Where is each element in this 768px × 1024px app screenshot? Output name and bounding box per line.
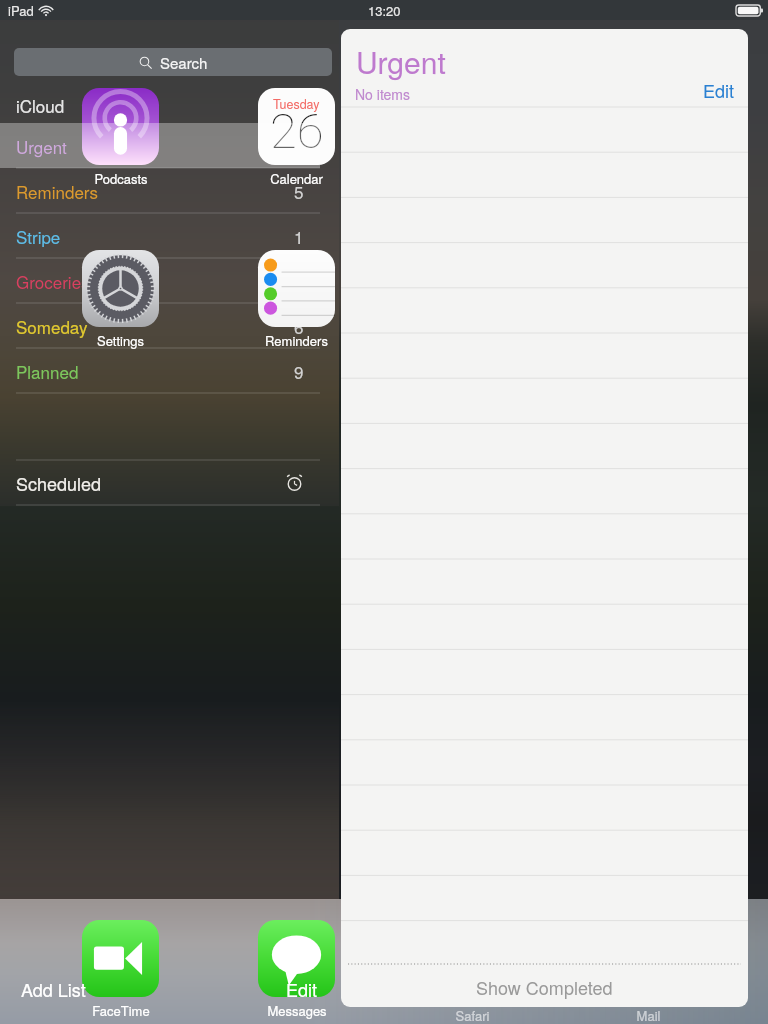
staticText: Tuesday — [273, 95, 320, 113]
staticText: Scheduled — [16, 470, 102, 496]
button[interactable]: Planned — [0, 348, 320, 393]
button[interactable]: Edit — [695, 72, 743, 108]
button[interactable]: Podcasts — [62, 88, 179, 188]
button[interactable]: Tuesday — [238, 88, 355, 188]
staticText: Calendar — [270, 169, 323, 188]
staticText: 13:20 — [368, 1, 401, 20]
staticText: Someday — [16, 314, 88, 338]
staticText: Add List — [21, 976, 86, 1000]
staticText: Edit — [703, 77, 735, 103]
button[interactable]: Show Completed — [341, 966, 748, 1007]
staticText: Stripe — [16, 224, 61, 248]
staticText: 1 — [294, 224, 304, 248]
staticText: Safari — [434, 1006, 511, 1024]
button[interactable]: Someday — [0, 303, 320, 348]
button[interactable]: Groceries — [0, 258, 320, 303]
staticText: Groceries — [16, 269, 90, 293]
button[interactable]: Add List — [10, 964, 97, 1012]
staticText: Urgent — [16, 134, 67, 158]
staticText: 5 — [294, 179, 304, 203]
staticText: Settings — [97, 331, 144, 350]
staticText: Show Completed — [476, 974, 613, 1000]
staticText: Search — [160, 52, 208, 73]
button[interactable]: iCloud — [0, 86, 320, 123]
staticText: Planned — [16, 359, 79, 383]
button[interactable]: Scheduled — [0, 460, 320, 505]
staticText: Reminders — [265, 331, 328, 350]
staticText: Messages — [267, 1001, 327, 1020]
button[interactable]: Search — [14, 48, 332, 76]
staticText: iCloud — [16, 93, 65, 117]
staticText: No items — [355, 84, 411, 104]
staticText: 6 — [294, 314, 304, 338]
staticText: Urgent — [356, 40, 446, 83]
button[interactable]: Reminders — [238, 250, 355, 350]
button[interactable]: FaceTime — [62, 920, 179, 1020]
staticText: Podcasts — [94, 169, 148, 188]
staticText: FaceTime — [92, 1001, 150, 1020]
button[interactable]: Edit — [275, 964, 329, 1012]
button[interactable]: Reminders — [0, 168, 320, 213]
staticText: Mail — [610, 1006, 687, 1024]
button[interactable]: Urgent — [0, 123, 320, 168]
staticText: Edit — [286, 976, 318, 1000]
staticText: Reminders — [16, 179, 99, 203]
button[interactable]: Settings — [62, 250, 179, 350]
button[interactable]: Stripe — [0, 213, 320, 258]
staticText: iPad — [8, 1, 34, 20]
staticText: 26 — [270, 103, 324, 160]
staticText: 9 — [294, 359, 304, 383]
button[interactable]: Messages — [238, 920, 355, 1020]
